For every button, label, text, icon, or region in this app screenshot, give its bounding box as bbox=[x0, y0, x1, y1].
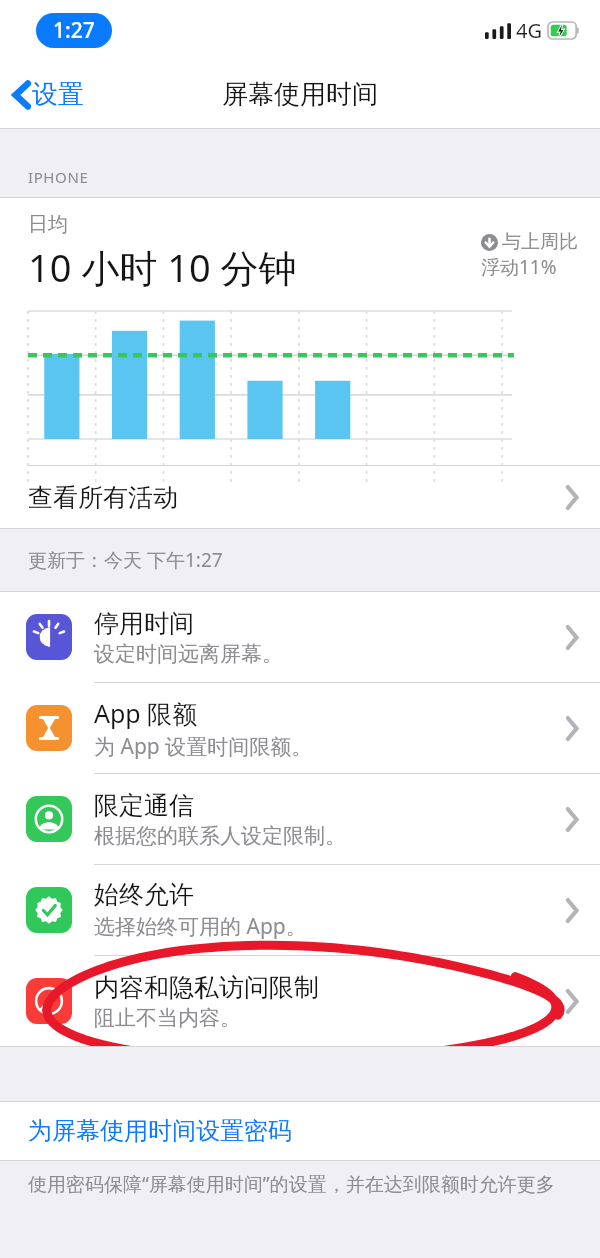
staticText: 更新于：今天 下午1:27 bbox=[28, 547, 223, 573]
staticText: 10 小时 10 分钟 bbox=[28, 241, 297, 293]
button[interactable]: 限定通信 bbox=[0, 774, 600, 864]
staticText: 设定时间远离屏幕。 bbox=[94, 641, 283, 667]
button[interactable]: 停用时间 bbox=[0, 592, 600, 682]
staticText: 日均 bbox=[28, 212, 68, 237]
staticText: 设置 bbox=[32, 78, 84, 111]
staticText: 始终允许 bbox=[94, 879, 194, 910]
staticText: 为 App 设置时间限额。 bbox=[94, 732, 313, 761]
staticText: IPHONE bbox=[28, 167, 89, 187]
staticText: 1:27 bbox=[53, 16, 95, 45]
staticText: 限定通信 bbox=[94, 790, 194, 821]
staticText: 内容和隐私访问限制 bbox=[94, 972, 319, 1003]
staticText: 选择始终可用的 App。 bbox=[94, 912, 307, 941]
button[interactable]: 查看所有活动 bbox=[0, 466, 600, 528]
staticText: 浮动11% bbox=[481, 254, 557, 280]
button[interactable]: 为屏幕使用时间设置密码 bbox=[0, 1102, 600, 1160]
button[interactable]: App 限额 bbox=[0, 683, 600, 773]
button[interactable]: 设置 bbox=[0, 72, 96, 117]
button[interactable]: 内容和隐私访问限制 bbox=[0, 956, 600, 1046]
staticText: App 限额 bbox=[94, 696, 198, 730]
button[interactable]: 始终允许 bbox=[0, 865, 600, 955]
staticText: 与上周比 bbox=[502, 230, 578, 254]
staticText: 4G bbox=[516, 17, 542, 44]
staticText: 查看所有活动 bbox=[28, 482, 566, 513]
staticText: 阻止不当内容。 bbox=[94, 1005, 241, 1031]
staticText: 屏幕使用时间 bbox=[222, 78, 378, 111]
staticText: 根据您的联系人设定限制。 bbox=[94, 823, 346, 849]
staticText: 停用时间 bbox=[94, 608, 194, 639]
staticText: 为屏幕使用时间设置密码 bbox=[28, 1116, 292, 1146]
staticText: 使用密码保障“屏幕使用时间”的设置，并在达到限额时允许更多 bbox=[28, 1171, 555, 1197]
